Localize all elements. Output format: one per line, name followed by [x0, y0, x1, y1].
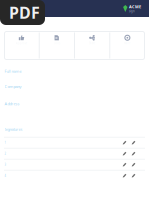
button[interactable]: Sign: [120, 138, 129, 147]
staticText: Signatures: [4, 126, 22, 132]
staticText: ACME: [129, 4, 141, 9]
button[interactable]: Sign: [120, 171, 129, 180]
staticText: 2: [4, 152, 6, 155]
button[interactable]: Company logo: [123, 4, 149, 13]
button[interactable]: Initial: [129, 149, 138, 158]
staticText: Company: [4, 84, 21, 89]
button[interactable]: Sign: [120, 160, 129, 169]
staticText: sign: [129, 9, 135, 13]
staticText: Full name: [4, 68, 21, 74]
button[interactable]: Initial: [129, 160, 138, 169]
button[interactable]: Share: [75, 31, 109, 59]
staticText: 3: [4, 163, 6, 166]
staticText: Address: [4, 101, 19, 106]
button[interactable]: Initial: [129, 138, 138, 147]
button[interactable]: PDF: [0, 0, 45, 25]
staticText: PDF: [9, 2, 40, 23]
button[interactable]: Initial: [129, 171, 138, 180]
button[interactable]: Sign: [120, 149, 129, 158]
button[interactable]: Settings: [110, 31, 144, 59]
button[interactable]: Documents: [40, 31, 74, 59]
staticText: 4: [4, 174, 6, 177]
button[interactable]: Approve: [4, 31, 39, 59]
staticText: 1: [4, 141, 6, 144]
